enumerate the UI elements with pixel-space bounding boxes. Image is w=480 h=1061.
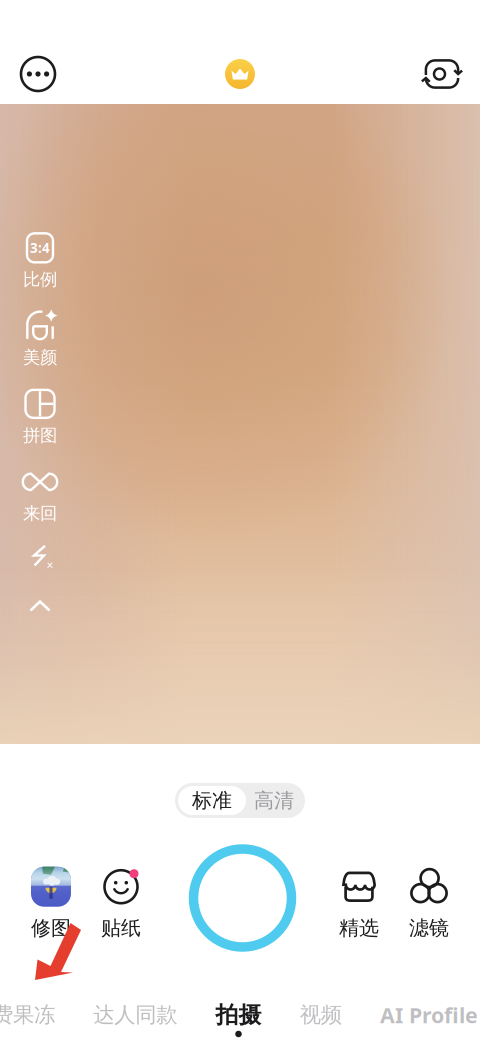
staticText: 拍摄 (215, 1001, 261, 1029)
staticText: 高清 (254, 788, 294, 813)
staticText: 拼图 (23, 425, 57, 446)
button[interactable]: VIP membership (220, 54, 260, 94)
button[interactable]: 美颜 (10, 311, 70, 367)
button[interactable]: 高清 (246, 786, 302, 815)
button[interactable]: 达人同款 (93, 1002, 177, 1028)
staticText: AI Profile (380, 1001, 478, 1029)
button[interactable]: More options (18, 54, 58, 94)
button[interactable]: Collapse tools (9, 595, 71, 617)
button[interactable]: 精选 (324, 866, 394, 940)
staticText: 标准 (192, 788, 232, 813)
staticText: 美颜 (23, 347, 57, 368)
staticText: 精选 (339, 916, 379, 940)
button[interactable]: 滤镜 (394, 866, 464, 940)
staticText: 比例 (23, 269, 57, 290)
button[interactable]: 标准 (178, 786, 246, 815)
button[interactable]: Shutter (193, 849, 291, 947)
staticText: 滤镜 (409, 916, 449, 940)
button[interactable]: 费果冻 (0, 1002, 55, 1028)
button[interactable]: AI Profile (380, 1002, 478, 1028)
staticText: × (46, 557, 53, 573)
button[interactable]: Flip camera (420, 54, 464, 94)
staticText: 来回 (23, 503, 57, 524)
button[interactable]: 修图 (16, 866, 86, 940)
staticText: 达人同款 (93, 1002, 177, 1028)
staticText: 修图 (31, 916, 71, 940)
staticText: 费果冻 (0, 1002, 55, 1028)
staticText: 贴纸 (101, 916, 141, 940)
button[interactable]: 贴纸 (86, 866, 156, 940)
staticText: 3:4 (30, 239, 50, 257)
button[interactable]: 拼图 (10, 389, 70, 445)
button[interactable]: 视频 (300, 1002, 342, 1028)
button[interactable]: 3:4 (10, 233, 70, 289)
staticText: 视频 (300, 1002, 342, 1028)
button[interactable]: Flash off (9, 539, 71, 573)
button[interactable]: 拍摄 (215, 1002, 261, 1028)
button[interactable]: 来回 (10, 467, 70, 523)
